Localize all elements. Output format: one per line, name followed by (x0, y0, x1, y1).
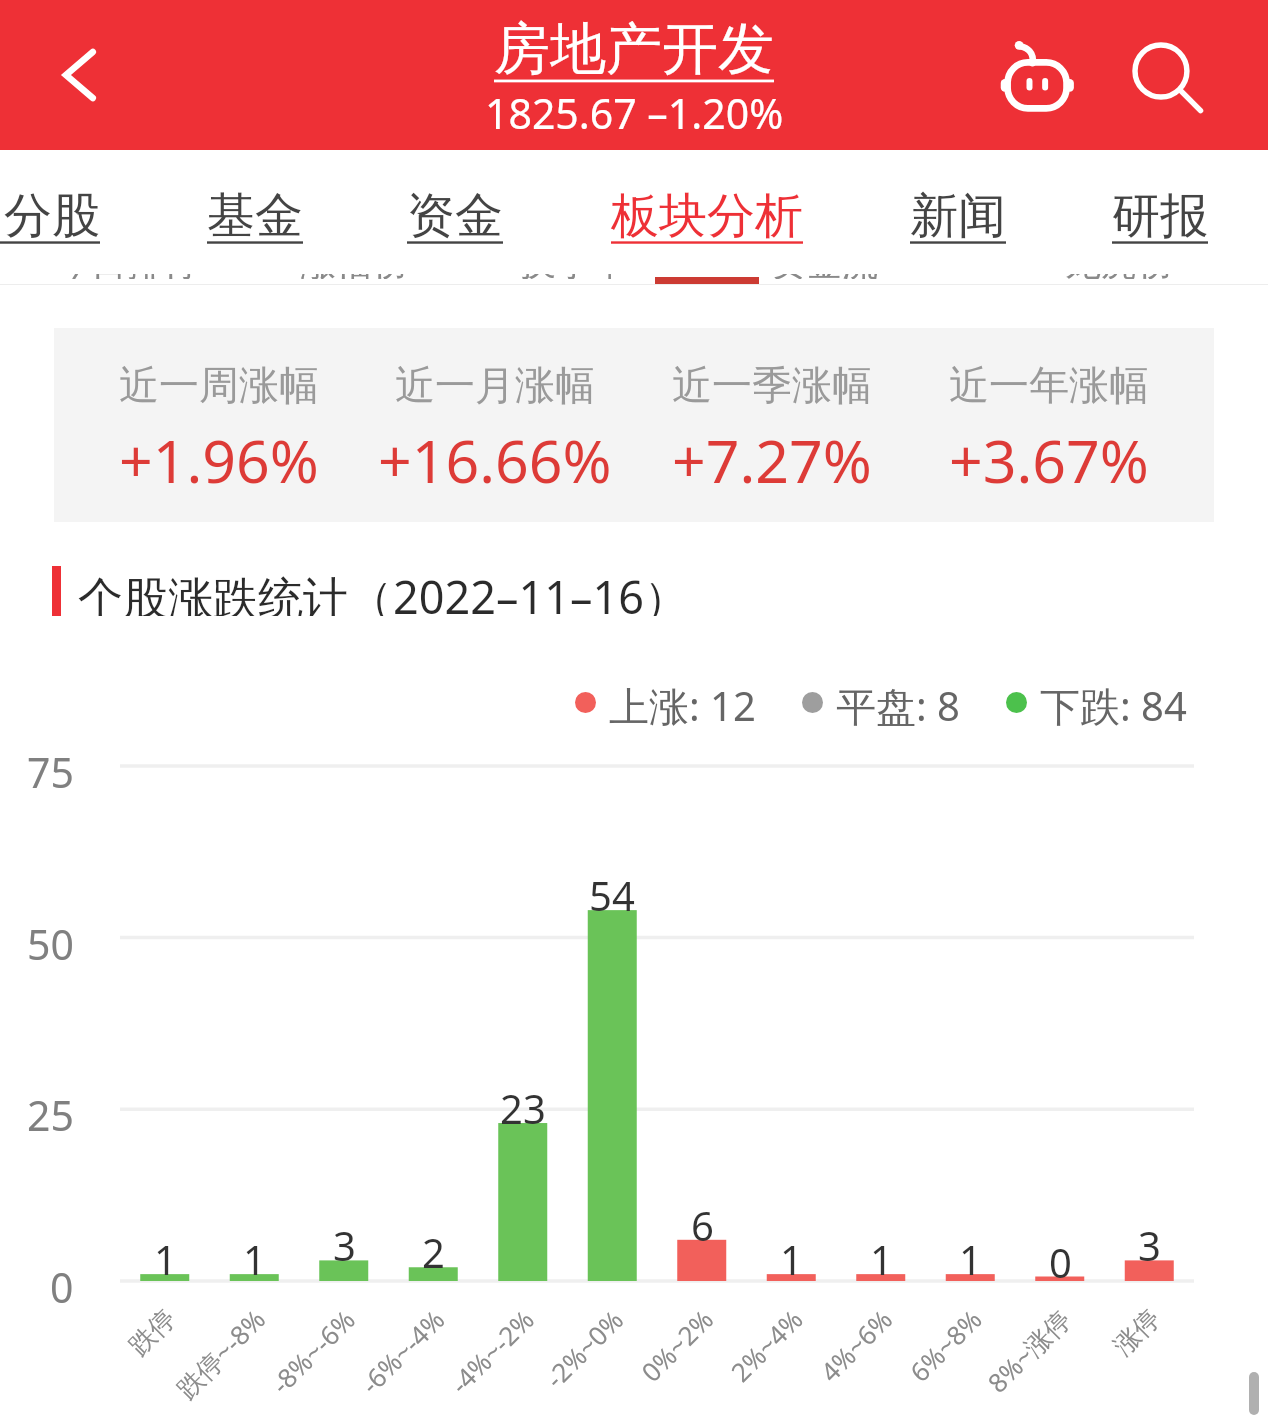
staticText: 新闻 (910, 186, 1006, 246)
button[interactable]: 新闻 (909, 180, 1007, 252)
staticText: 23 (500, 1081, 546, 1135)
button[interactable]: Back (30, 25, 130, 125)
staticText: 1 (243, 1232, 266, 1286)
staticText: 资金 (407, 186, 503, 246)
staticText: 房地产开发 (494, 14, 774, 85)
staticText: +3.67% (949, 420, 1149, 500)
button[interactable]: 研报 (1111, 180, 1209, 252)
staticText: 1 (154, 1232, 177, 1286)
button[interactable]: 资金 (406, 180, 504, 252)
staticText: 6 (691, 1198, 714, 1252)
staticText: 上涨: 12 (609, 678, 756, 726)
staticText: 近一年涨幅 (949, 360, 1149, 410)
button[interactable]: Search (1118, 28, 1218, 128)
staticText: 个股涨跌统计（2022–11–16） (78, 566, 689, 616)
staticText: 1 (870, 1232, 893, 1286)
staticText: 基金 (207, 186, 303, 246)
staticText: +1.96% (119, 420, 319, 500)
staticText: +7.27% (672, 420, 872, 500)
button[interactable]: 上涨: 12 (575, 678, 756, 726)
button[interactable]: 板块分析 (609, 180, 805, 252)
staticText: 细分股 (0, 186, 100, 246)
staticText: +16.66% (378, 420, 612, 500)
staticText: 1 (780, 1232, 803, 1286)
staticText: 近一季涨幅 (672, 360, 872, 410)
staticText: 近一周涨幅 (119, 360, 319, 410)
staticText: 下跌: 84 (1040, 678, 1187, 726)
staticText: 0 (1049, 1235, 1072, 1289)
staticText: 1825.67 –1.20% (485, 85, 784, 141)
button[interactable]: 基金 (206, 180, 304, 252)
staticText: 54 (589, 868, 635, 922)
button[interactable]: 细分股 (0, 180, 101, 252)
staticText: 1 (959, 1232, 982, 1286)
staticText: 2 (422, 1225, 445, 1279)
staticText: 板块分析 (611, 186, 803, 246)
staticText: 3 (1138, 1218, 1161, 1272)
staticText: 近一月涨幅 (395, 360, 595, 410)
staticText: 25 (27, 1087, 74, 1143)
button[interactable]: 平盘: 8 (802, 678, 960, 726)
button[interactable]: AI assistant (988, 28, 1088, 128)
staticText: 研报 (1112, 186, 1208, 246)
staticText: 0 (50, 1259, 74, 1315)
staticText: 75 (27, 744, 74, 800)
staticText: 3 (333, 1218, 356, 1272)
staticText: 50 (27, 916, 74, 972)
staticText: 平盘: 8 (836, 678, 960, 726)
button[interactable]: 下跌: 84 (1006, 678, 1187, 726)
